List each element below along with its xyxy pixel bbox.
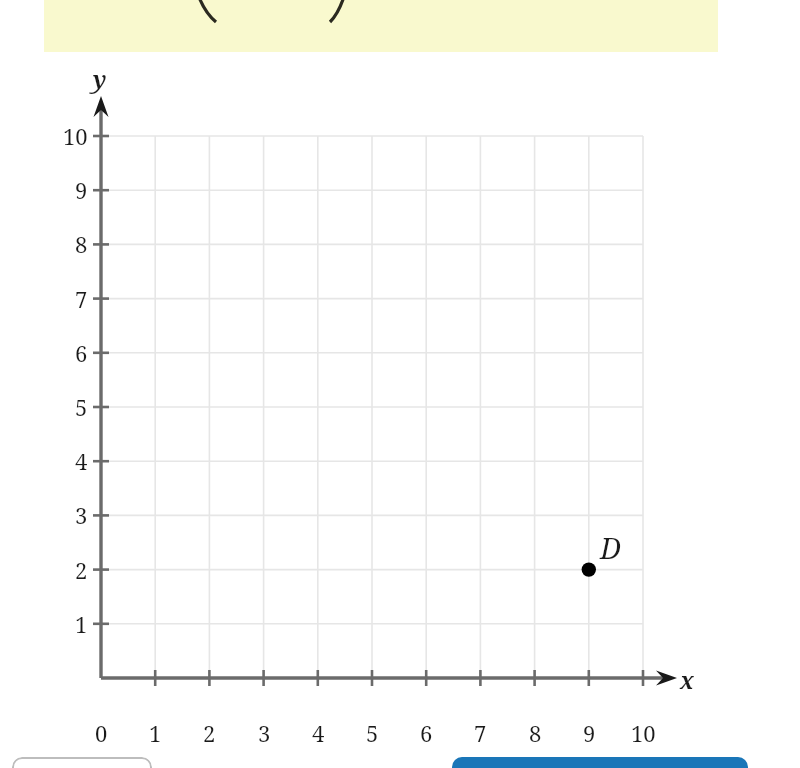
staticText: 8 bbox=[75, 229, 88, 259]
staticText: 8 bbox=[529, 718, 542, 748]
staticText: 3 bbox=[75, 500, 88, 530]
button[interactable]: Previous bbox=[12, 757, 152, 768]
staticText: x bbox=[680, 664, 694, 695]
staticText: 9 bbox=[75, 175, 88, 205]
staticText: 7 bbox=[75, 284, 88, 314]
staticText: 1 bbox=[149, 718, 162, 748]
staticText: 5 bbox=[366, 718, 379, 748]
staticText: 1 bbox=[75, 609, 88, 639]
staticText: 10 bbox=[63, 121, 88, 151]
staticText: 3 bbox=[258, 718, 271, 748]
staticText: 4 bbox=[312, 718, 325, 748]
staticText: 9 bbox=[583, 718, 596, 748]
staticText: 6 bbox=[75, 338, 88, 368]
staticText: D bbox=[600, 528, 622, 567]
staticText: 5 bbox=[75, 392, 88, 422]
staticText: y bbox=[93, 63, 107, 94]
staticText: 10 bbox=[631, 718, 656, 748]
staticText: 2 bbox=[203, 718, 216, 748]
staticText: 6 bbox=[420, 718, 433, 748]
button[interactable]: Check answer bbox=[452, 757, 748, 768]
staticText: 2 bbox=[75, 555, 88, 585]
staticText: 7 bbox=[474, 718, 487, 748]
staticText: 0 bbox=[95, 718, 108, 748]
staticText: 4 bbox=[75, 446, 88, 476]
